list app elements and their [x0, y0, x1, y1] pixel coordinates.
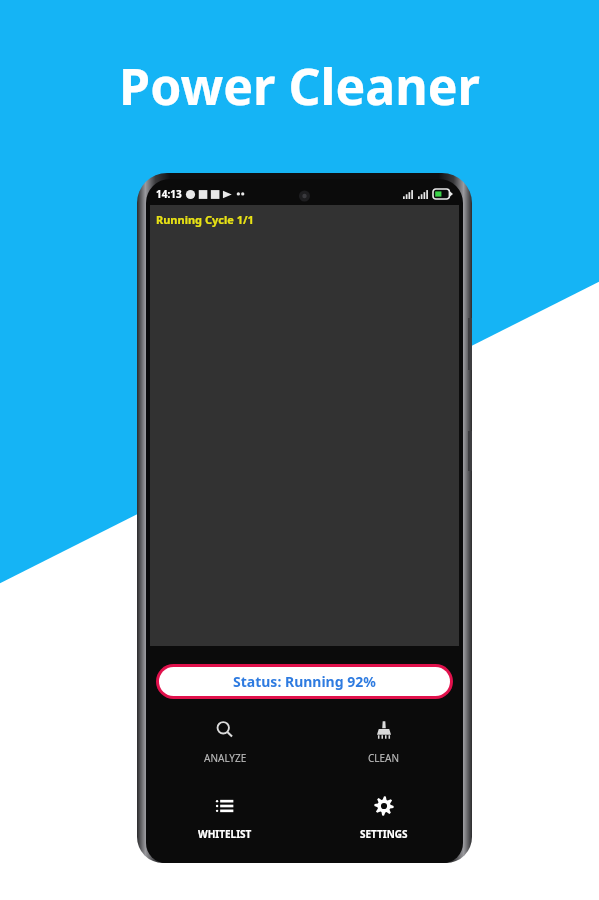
staticText: Status: Running 92% [233, 672, 376, 691]
staticText: Running Cycle 1/1 [156, 212, 254, 227]
button[interactable]: CLEAN [304, 715, 463, 769]
staticText: Power Cleaner [119, 52, 480, 120]
button[interactable]: SETTINGS [304, 791, 463, 845]
button[interactable]: ANALYZE [146, 715, 304, 769]
staticText: CLEAN [368, 751, 400, 765]
button[interactable]: WHITELIST [146, 791, 304, 845]
staticText: SETTINGS [360, 827, 408, 841]
button[interactable]: Status: Running 92% [159, 667, 450, 696]
staticText: ANALYZE [204, 751, 247, 765]
staticText: 14:13 [156, 187, 182, 201]
staticText: WHITELIST [198, 827, 252, 841]
